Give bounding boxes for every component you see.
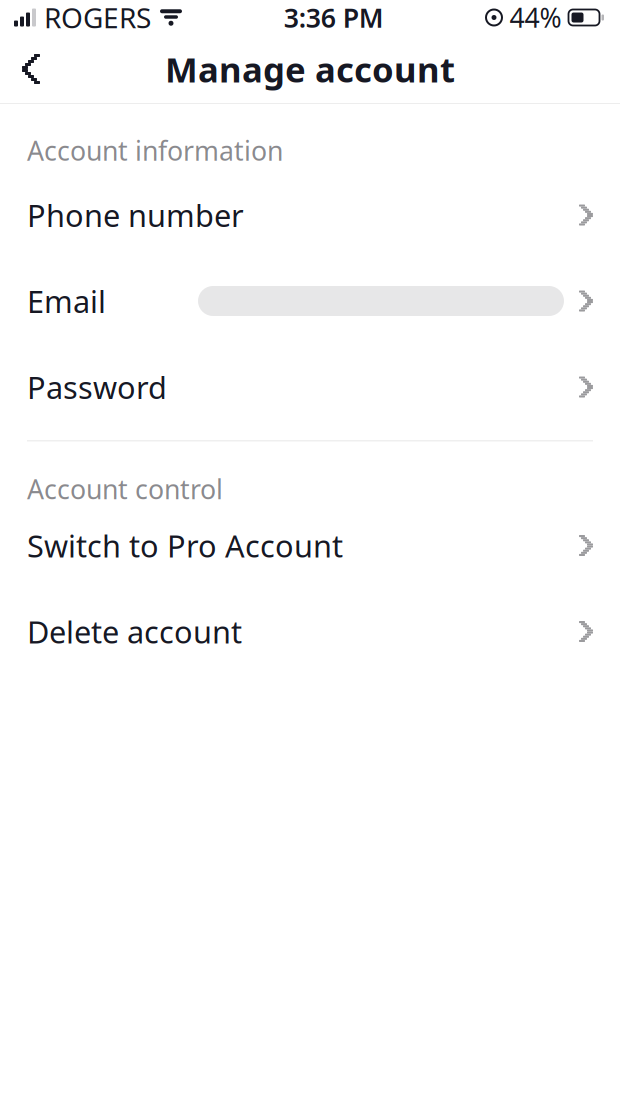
staticText: ROGERS bbox=[44, 0, 151, 36]
staticText: Manage account bbox=[165, 46, 455, 92]
button[interactable]: Password bbox=[0, 366, 620, 408]
staticText: Password bbox=[27, 367, 167, 407]
button[interactable]: Delete account bbox=[0, 610, 620, 652]
staticText: 3:36 PM bbox=[284, 0, 384, 35]
staticText: Phone number bbox=[27, 195, 244, 235]
staticText: Delete account bbox=[27, 611, 242, 652]
staticText: Account control bbox=[27, 471, 223, 507]
staticText: Email bbox=[27, 281, 106, 321]
staticText: 44% bbox=[509, 0, 561, 35]
staticText: Switch to Pro Account bbox=[27, 525, 343, 566]
button[interactable]: Switch to Pro Account bbox=[0, 524, 620, 566]
button[interactable]: Email bbox=[0, 280, 620, 322]
button[interactable]: Back bbox=[0, 35, 64, 103]
staticText: Account information bbox=[27, 133, 283, 168]
button[interactable]: Phone number bbox=[0, 194, 620, 236]
